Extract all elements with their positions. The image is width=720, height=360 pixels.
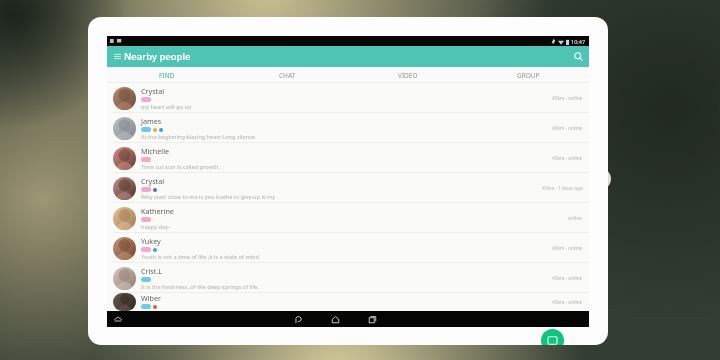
staticText: Why start close to me is you loathe to g… [141, 193, 276, 201]
staticText: Time cut scar is called growth. [141, 163, 220, 171]
button[interactable]: Menu [112, 51, 123, 62]
staticText: Crystal [141, 176, 165, 186]
button[interactable]: Search [572, 50, 585, 63]
button[interactable]: Michelle [107, 143, 589, 173]
staticText: At the beginning blazing heart Long sile… [141, 133, 255, 141]
button[interactable]: Home [330, 314, 341, 325]
button[interactable]: Crystal [107, 173, 589, 203]
button[interactable]: Back [293, 314, 304, 325]
button[interactable]: Recents [367, 314, 378, 325]
staticText: VIDEO [398, 71, 418, 80]
staticText: Crystal [141, 86, 165, 96]
staticText: 43km · online [552, 299, 583, 306]
button[interactable]: Yukey [107, 233, 589, 263]
button[interactable]: Assist [112, 313, 124, 325]
button[interactable]: James [107, 113, 589, 143]
staticText: online [568, 215, 583, 222]
button[interactable]: Crist.L [107, 263, 589, 293]
button[interactable]: Katherine [107, 203, 589, 233]
staticText: 43km · online [552, 275, 583, 282]
staticText: happy day~ [141, 223, 172, 231]
staticText: It is the freshness ,of the deep springs… [141, 283, 259, 291]
button[interactable]: Wiber [107, 293, 589, 311]
button[interactable]: New message [541, 329, 564, 345]
staticText: Michelle [141, 146, 170, 156]
staticText: 43km · online [552, 125, 583, 132]
button[interactable]: FIND [107, 67, 227, 83]
staticText: Crist.L [141, 266, 163, 276]
staticText: Nearby people [124, 50, 191, 63]
button[interactable]: Crystal [107, 83, 589, 113]
staticText: Yukey [141, 236, 161, 246]
staticText: 43km · online [552, 245, 583, 252]
staticText: 43km · online [552, 155, 583, 162]
staticText: Youth is not a time of life ,it is a sta… [141, 253, 260, 261]
staticText: FIND [159, 71, 175, 80]
staticText: Katherine [141, 206, 174, 216]
staticText: my heart will go on [141, 103, 192, 111]
staticText: GROUP [517, 71, 540, 80]
staticText: Wiber [141, 293, 161, 303]
staticText: CHAT [279, 71, 296, 80]
staticText: 10:47 [571, 38, 586, 45]
button[interactable]: CHAT [227, 67, 347, 83]
staticText: 43km · 1 hour ago [542, 185, 583, 192]
button[interactable]: GROUP [468, 67, 589, 83]
button[interactable]: VIDEO [347, 67, 468, 83]
staticText: James [141, 116, 162, 126]
staticText: 43km · online [552, 95, 583, 102]
